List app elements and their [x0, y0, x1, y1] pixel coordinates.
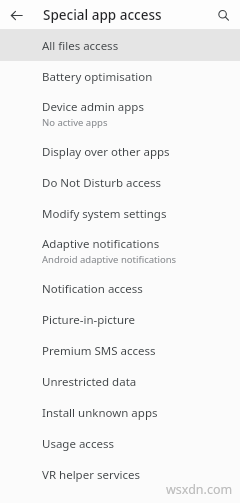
staticText: Modify system settings	[42, 206, 167, 222]
staticText: Display over other apps	[42, 144, 170, 160]
staticText: Android adaptive notifications	[42, 253, 177, 266]
staticText: No active apps	[42, 116, 108, 129]
staticText: Install unknown apps	[42, 405, 158, 421]
staticText: wsxdn.com	[166, 481, 233, 498]
button[interactable]: Display over other apps	[0, 136, 240, 167]
button[interactable]: Picture-in-picture	[0, 304, 240, 335]
staticText: Unrestricted data	[42, 374, 137, 390]
button[interactable]: Device admin apps	[0, 92, 240, 136]
staticText: Special app access	[43, 6, 162, 24]
staticText: Do Not Disturb access	[42, 175, 162, 191]
staticText: Picture-in-picture	[42, 312, 136, 328]
button[interactable]: Modify system settings	[0, 198, 240, 229]
button[interactable]: Install unknown apps	[0, 397, 240, 428]
button[interactable]: Adaptive notifications	[0, 229, 240, 273]
staticText: Device admin apps	[42, 99, 144, 115]
button[interactable]: VR helper services	[0, 459, 240, 490]
button[interactable]: Usage access	[0, 428, 240, 459]
button[interactable]: Unrestricted data	[0, 366, 240, 397]
staticText: Battery optimisation	[42, 69, 153, 85]
staticText: Usage access	[42, 436, 114, 452]
button[interactable]: All files access	[0, 30, 240, 61]
button[interactable]: Premium SMS access	[0, 335, 240, 366]
button[interactable]: Search	[207, 0, 240, 30]
staticText: Notification access	[42, 281, 143, 297]
button[interactable]: Navigate up	[0, 0, 33, 30]
button[interactable]: Notification access	[0, 273, 240, 304]
staticText: Adaptive notifications	[42, 236, 160, 252]
button[interactable]: Battery optimisation	[0, 61, 240, 92]
staticText: Premium SMS access	[42, 343, 156, 359]
staticText: VR helper services	[42, 467, 140, 483]
staticText: All files access	[42, 38, 119, 54]
button[interactable]: Do Not Disturb access	[0, 167, 240, 198]
